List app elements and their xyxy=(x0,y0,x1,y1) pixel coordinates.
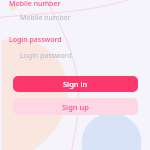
staticText: Login password xyxy=(20,51,72,61)
button[interactable]: Sign up xyxy=(13,98,138,115)
button[interactable]: Sign in xyxy=(13,76,138,92)
staticText: Sign up xyxy=(62,102,89,112)
staticText: Sign in xyxy=(63,79,88,89)
staticText: Login password xyxy=(9,35,62,45)
staticText: Mobile number xyxy=(9,0,61,9)
staticText: Mobile number xyxy=(20,13,71,23)
